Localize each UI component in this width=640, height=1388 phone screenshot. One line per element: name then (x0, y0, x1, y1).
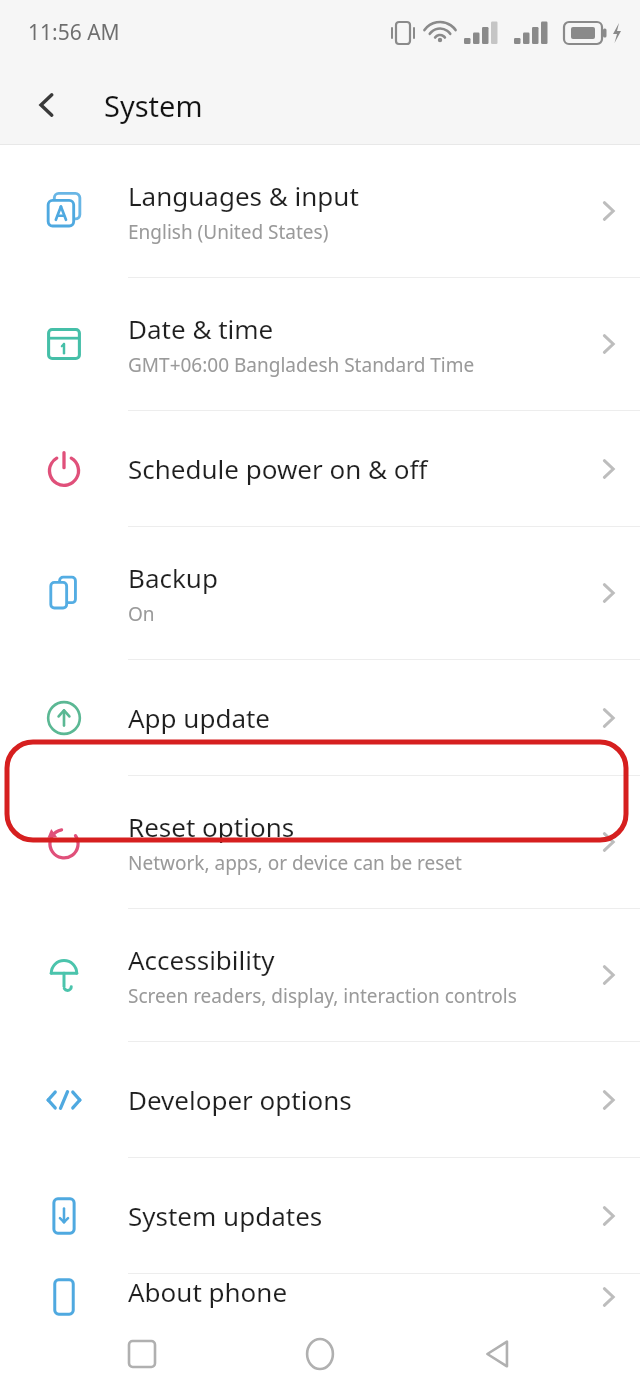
staticText: English (United States) (128, 219, 329, 245)
staticText: Date & time (128, 311, 274, 346)
button[interactable]: System updates (0, 1158, 640, 1274)
staticText: Schedule power on & off (128, 451, 428, 486)
staticText: Network, apps, or device can be reset (128, 850, 462, 876)
button[interactable]: App update (0, 660, 640, 776)
button[interactable]: Home (284, 1320, 356, 1388)
staticText: Developer options (128, 1082, 352, 1117)
staticText: System (104, 86, 203, 125)
staticText: System updates (128, 1198, 323, 1233)
staticText: On (128, 601, 155, 627)
button[interactable]: Back (462, 1320, 534, 1388)
staticText: About phone (128, 1274, 288, 1309)
staticText: 11:56 AM (28, 18, 120, 47)
button[interactable]: Languages & input (0, 145, 640, 278)
button[interactable]: Recents (106, 1320, 178, 1388)
button[interactable]: Reset options (0, 776, 640, 909)
staticText: Backup (128, 560, 218, 595)
button[interactable]: Accessibility (0, 909, 640, 1042)
button[interactable]: About phone (0, 1274, 640, 1320)
button[interactable]: Date & time (0, 278, 640, 411)
staticText: Accessibility (128, 942, 275, 977)
staticText: App update (128, 700, 271, 735)
staticText: GMT+06:00 Bangladesh Standard Time (128, 352, 475, 378)
button[interactable]: Back (16, 74, 78, 136)
button[interactable]: Schedule power on & off (0, 411, 640, 527)
button[interactable]: Developer options (0, 1042, 640, 1158)
staticText: Screen readers, display, interaction con… (128, 983, 517, 1009)
staticText: Languages & input (128, 178, 359, 213)
button[interactable]: Backup (0, 527, 640, 660)
staticText: Reset options (128, 809, 295, 844)
